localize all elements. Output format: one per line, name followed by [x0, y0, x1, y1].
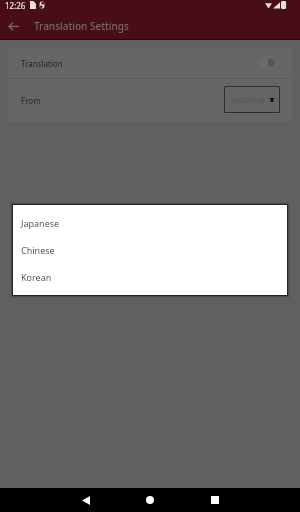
button[interactable]: Korean: [13, 263, 287, 290]
button[interactable]: From: [8, 79, 292, 122]
button[interactable]: Translation switch: [256, 54, 278, 72]
button[interactable]: Japanese: [224, 86, 280, 113]
staticText: Japanese: [231, 94, 265, 105]
staticText: Translation Settings: [34, 19, 129, 33]
staticText: Japanese: [21, 217, 60, 229]
staticText: Chinese: [21, 244, 55, 256]
button[interactable]: Japanese: [13, 209, 287, 236]
staticText: 12:26: [5, 0, 26, 10]
staticText: Korean: [21, 271, 52, 283]
button[interactable]: Back: [63, 488, 108, 512]
button[interactable]: Navigate up: [1, 14, 26, 38]
staticText: From: [21, 95, 41, 106]
button[interactable]: Recent apps: [192, 488, 237, 512]
staticText: Translation: [21, 58, 63, 69]
button[interactable]: Chinese: [13, 236, 287, 263]
button[interactable]: Home: [127, 488, 172, 512]
button[interactable]: Translation: [8, 48, 292, 78]
